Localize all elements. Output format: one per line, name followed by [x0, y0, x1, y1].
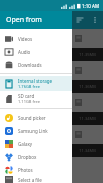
button[interactable]: Downloads	[0, 58, 72, 71]
button[interactable]: Samsung Link	[0, 124, 72, 137]
button[interactable]: Select a file	[0, 176, 72, 183]
button[interactable]: Sound picker	[0, 111, 72, 124]
staticText: 1.76GB free	[18, 84, 40, 89]
staticText: Open from	[6, 15, 42, 25]
button[interactable]: SD card	[0, 91, 72, 106]
staticText: Dropbox	[18, 154, 37, 160]
button[interactable]: Photos	[0, 163, 72, 176]
staticText: 11.34MB	[79, 116, 96, 121]
staticText: 11.36MB	[79, 84, 96, 89]
staticText: Downloads	[18, 62, 42, 68]
staticText: 11.35MB	[79, 52, 96, 57]
button[interactable]: Videos	[0, 32, 72, 45]
button[interactable]: Sort	[75, 15, 85, 25]
button[interactable]: Open from	[0, 11, 72, 29]
button[interactable]: Internal storage	[0, 76, 72, 91]
staticText: 1.11GB free	[18, 99, 40, 104]
staticText: Photos	[18, 167, 33, 173]
button[interactable]: Galaxy	[0, 137, 72, 150]
staticText: Galaxy	[18, 141, 33, 147]
staticText: Samsung Link	[18, 128, 48, 134]
staticText: 1:10 AM	[82, 3, 100, 9]
staticText: Internal storage	[18, 78, 53, 84]
staticText: Select a file	[18, 177, 42, 183]
button[interactable]: Close drawer	[72, 0, 103, 183]
staticText: Audio	[18, 49, 31, 55]
button[interactable]: Dropbox	[0, 150, 72, 163]
staticText: Sound picker	[18, 115, 46, 121]
staticText: Videos	[18, 36, 33, 42]
button[interactable]: Audio	[0, 45, 72, 58]
button[interactable]: More options	[90, 15, 100, 25]
staticText: 11.34MB	[79, 148, 96, 153]
staticText: SD card	[18, 93, 35, 99]
